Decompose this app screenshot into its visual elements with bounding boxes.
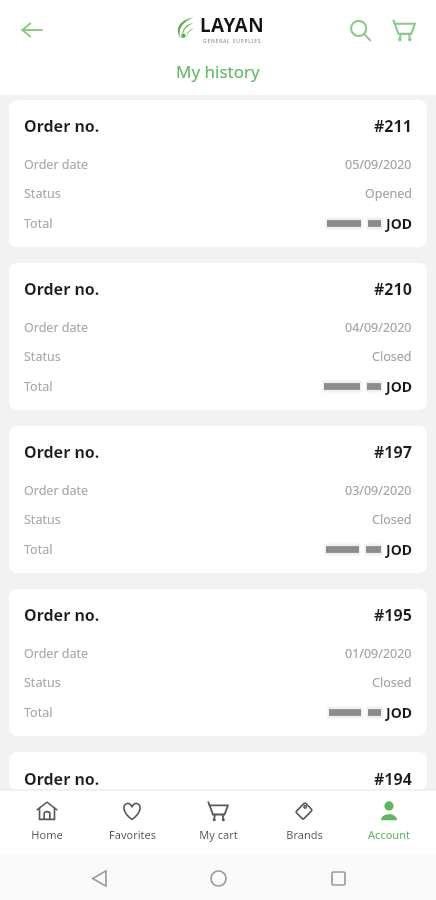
staticText: Order no. xyxy=(24,768,100,790)
staticText: My history xyxy=(176,60,260,83)
staticText: Status xyxy=(24,511,61,528)
staticText: Order date xyxy=(24,482,89,499)
button[interactable]: Favorites xyxy=(93,796,171,846)
button[interactable]: Account xyxy=(350,796,428,846)
staticText: JOD xyxy=(386,214,412,233)
staticText: Status xyxy=(24,674,61,691)
staticText: JOD xyxy=(386,540,412,559)
staticText: My cart xyxy=(199,827,238,842)
button[interactable]: Order no. xyxy=(9,263,427,410)
staticText: Account xyxy=(368,827,410,842)
button[interactable]: Back xyxy=(78,857,120,899)
button[interactable]: Back xyxy=(8,6,56,54)
staticText: Closed xyxy=(372,511,412,528)
staticText: Total xyxy=(24,215,53,232)
staticText: Order no. xyxy=(24,441,100,463)
staticText: Home xyxy=(31,827,63,842)
button[interactable]: Recents xyxy=(317,857,359,899)
staticText: #211 xyxy=(374,115,412,137)
staticText: Order no. xyxy=(24,604,100,626)
button[interactable]: Cart xyxy=(382,8,426,52)
staticText: 04/09/2020 xyxy=(345,319,412,336)
staticText: Order date xyxy=(24,156,89,173)
staticText: LAYAN xyxy=(200,12,264,38)
staticText: Total xyxy=(24,541,53,558)
staticText: Order no. xyxy=(24,115,100,137)
staticText: JOD xyxy=(386,377,412,396)
staticText: #197 xyxy=(374,441,412,463)
staticText: Order no. xyxy=(24,278,100,300)
staticText: GENERAL SUPPLIES xyxy=(203,38,262,45)
button[interactable]: Home xyxy=(8,796,86,846)
staticText: Order date xyxy=(24,645,89,662)
staticText: Closed xyxy=(372,348,412,365)
staticText: Brands xyxy=(286,827,323,842)
button[interactable]: Order no. xyxy=(9,426,427,573)
button[interactable]: Search xyxy=(338,8,382,52)
button[interactable]: Order no. xyxy=(9,589,427,736)
staticText: Total xyxy=(24,704,53,721)
button[interactable]: Brands xyxy=(265,796,343,846)
button[interactable]: My cart xyxy=(179,796,257,846)
staticText: JOD xyxy=(386,703,412,722)
staticText: Opened xyxy=(365,185,412,202)
staticText: Status xyxy=(24,348,61,365)
staticText: Order date xyxy=(24,319,89,336)
staticText: 01/09/2020 xyxy=(345,645,412,662)
staticText: #195 xyxy=(374,604,412,626)
staticText: #194 xyxy=(374,768,412,790)
staticText: Status xyxy=(24,185,61,202)
staticText: 05/09/2020 xyxy=(345,156,412,173)
staticText: Closed xyxy=(372,674,412,691)
staticText: Total xyxy=(24,378,53,395)
staticText: 03/09/2020 xyxy=(345,482,412,499)
staticText: #210 xyxy=(374,278,412,300)
button[interactable]: Order no. xyxy=(9,752,427,790)
staticText: Favorites xyxy=(109,827,156,842)
button[interactable]: Order no. xyxy=(9,100,427,247)
button[interactable]: Home xyxy=(197,857,239,899)
